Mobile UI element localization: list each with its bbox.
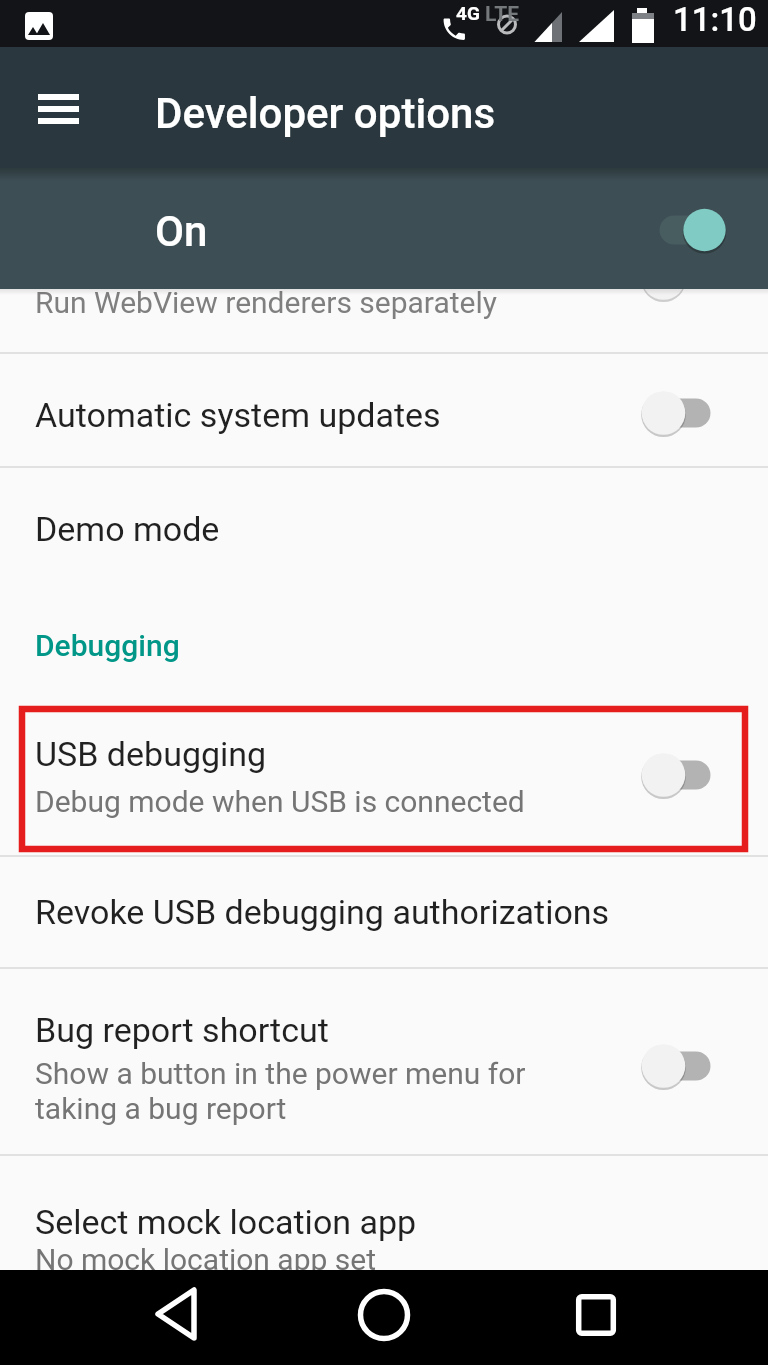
button[interactable] [124,1267,228,1362]
button[interactable] [0,857,768,967]
staticText: Demo mode [35,509,220,549]
staticText: Automatic system updates [35,395,441,435]
staticText: Debug mode when USB is connected [35,784,525,819]
button[interactable] [620,255,740,301]
button[interactable] [0,1156,768,1270]
staticText: Revoke USB debugging authorizations [35,892,610,932]
staticText: Run WebView renderers separately [35,285,497,320]
button[interactable] [0,969,768,1154]
staticText: Show a button in the power menu for [35,1056,526,1091]
staticText: Developer options [155,89,496,138]
staticText: LTE [485,2,520,27]
button[interactable] [0,354,768,466]
button[interactable] [544,1267,648,1362]
button[interactable] [22,80,96,138]
button[interactable] [332,1267,436,1362]
staticText: Debugging [35,628,180,663]
button[interactable] [620,752,740,798]
button[interactable]: On [0,168,768,289]
button[interactable] [0,289,768,352]
button[interactable] [640,207,740,253]
staticText: No mock location app set [35,1242,377,1277]
staticText: taking a bug report [35,1091,287,1126]
button[interactable] [620,1043,740,1089]
staticText: USB debugging [35,734,267,774]
staticText: 11:10 [673,0,757,39]
staticText: On [155,207,208,256]
staticText: Bug report shortcut [35,1010,329,1050]
staticText: Select mock location app [35,1202,417,1242]
button[interactable] [0,706,768,852]
button[interactable] [0,468,768,580]
button[interactable] [620,390,740,436]
staticText: 4G [456,2,480,24]
